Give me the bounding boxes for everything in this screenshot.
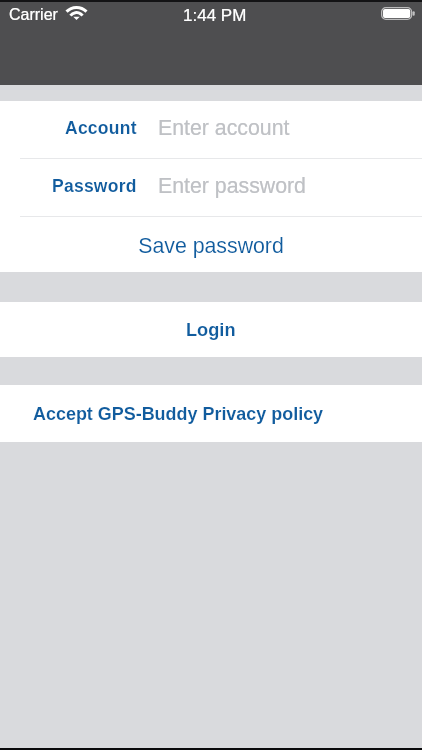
staticText: Accept GPS-Buddy Privacy policy <box>33 404 324 424</box>
staticText: 1:44 PM <box>183 6 247 25</box>
staticText: Account <box>65 118 137 138</box>
button[interactable]: Login <box>0 302 422 357</box>
button[interactable]: Account <box>0 101 422 158</box>
staticText: Password <box>52 176 137 196</box>
staticText: Carrier <box>9 6 58 24</box>
staticText: Enter account <box>158 116 290 140</box>
other: Battery full <box>381 7 415 20</box>
staticText: Save password <box>138 234 284 258</box>
staticText: Enter password <box>158 174 306 198</box>
button[interactable]: Save password <box>0 217 422 272</box>
button[interactable]: Accept GPS-Buddy Privacy policy <box>0 385 422 442</box>
button[interactable]: Password <box>0 159 422 216</box>
staticText: Login <box>186 320 236 340</box>
other: Wi-Fi signal <box>66 6 87 20</box>
